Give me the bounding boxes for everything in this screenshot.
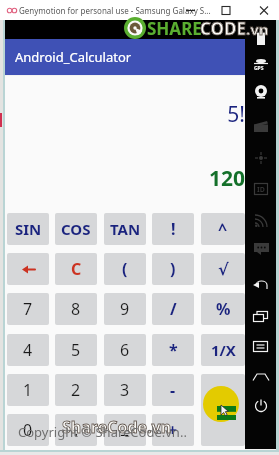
staticText: SIN bbox=[15, 219, 42, 239]
button[interactable]: . bbox=[55, 414, 97, 446]
staticText: . bbox=[74, 419, 79, 441]
button[interactable]: ) bbox=[152, 253, 194, 285]
staticText: GPS bbox=[254, 65, 264, 72]
staticText: √ bbox=[218, 260, 229, 279]
staticText: .vn bbox=[246, 19, 269, 39]
staticText: % bbox=[216, 298, 231, 320]
button[interactable]: 9 bbox=[104, 293, 146, 325]
button[interactable]: % bbox=[201, 293, 245, 325]
staticText: Android_Calculator bbox=[15, 48, 132, 66]
button[interactable]: C bbox=[55, 253, 97, 285]
staticText: 4 bbox=[23, 339, 33, 361]
staticText: ShareCode.vn bbox=[62, 416, 172, 438]
staticText: Copyright © ShareCode.vn.. bbox=[18, 423, 187, 441]
button[interactable]: SIN bbox=[7, 213, 49, 245]
staticText: * bbox=[169, 339, 178, 361]
button[interactable]: ( bbox=[104, 253, 146, 285]
staticText: ShareCode.vn bbox=[62, 416, 172, 438]
staticText: 5 bbox=[71, 339, 81, 361]
button[interactable]: - bbox=[152, 374, 194, 406]
button[interactable]: * bbox=[152, 334, 194, 366]
button[interactable]: 4 bbox=[7, 334, 49, 366]
staticText: ^ bbox=[218, 218, 228, 240]
staticText: 1/X bbox=[211, 340, 236, 360]
staticText: .vn bbox=[246, 19, 269, 39]
button[interactable]: Backspace bbox=[7, 253, 49, 285]
staticText: 5! bbox=[4, 100, 245, 129]
button[interactable]: COS bbox=[55, 213, 97, 245]
button[interactable]: 0 bbox=[7, 414, 49, 446]
button[interactable]: ! bbox=[152, 213, 194, 245]
staticText: 6 bbox=[120, 339, 130, 361]
staticText: ± bbox=[120, 419, 130, 441]
button[interactable]: 3 bbox=[104, 374, 146, 406]
staticText: SHARE bbox=[147, 17, 202, 40]
button[interactable]: ± bbox=[104, 414, 146, 446]
button[interactable]: / bbox=[152, 293, 194, 325]
button[interactable]: 1 bbox=[7, 374, 49, 406]
staticText: + bbox=[168, 419, 178, 441]
staticText: 8 bbox=[71, 298, 81, 320]
staticText: / bbox=[170, 298, 177, 320]
staticText: 1 bbox=[23, 379, 33, 401]
button[interactable]: Equals bbox=[201, 374, 245, 446]
button[interactable]: ^ bbox=[201, 213, 245, 245]
staticText: CODE bbox=[200, 17, 246, 40]
staticText: 3 bbox=[120, 379, 130, 401]
staticText: CODE bbox=[200, 17, 246, 40]
staticText: COS bbox=[61, 219, 91, 239]
staticText: 0 bbox=[23, 419, 33, 441]
staticText: C bbox=[71, 258, 82, 280]
button[interactable]: √ bbox=[201, 253, 245, 285]
staticText: 9 bbox=[120, 298, 130, 320]
button[interactable]: 1/X bbox=[201, 334, 245, 366]
staticText: 120 bbox=[4, 164, 245, 193]
staticText: 7 bbox=[23, 298, 33, 320]
button[interactable]: 6 bbox=[104, 334, 146, 366]
button[interactable]: 5 bbox=[55, 334, 97, 366]
staticText: ( bbox=[122, 258, 128, 280]
button[interactable]: + bbox=[152, 414, 194, 446]
staticText: - bbox=[170, 379, 176, 401]
staticText: ID bbox=[257, 185, 265, 195]
staticText: TAN bbox=[110, 219, 141, 239]
staticText: 2 bbox=[71, 379, 81, 401]
staticText: Genymotion for personal use - Samsung Ga… bbox=[19, 5, 211, 16]
button[interactable]: 2 bbox=[55, 374, 97, 406]
button[interactable]: 8 bbox=[55, 293, 97, 325]
button[interactable]: TAN bbox=[104, 213, 146, 245]
button[interactable]: 7 bbox=[7, 293, 49, 325]
staticText: ) bbox=[170, 258, 176, 280]
staticText: ! bbox=[171, 218, 176, 240]
